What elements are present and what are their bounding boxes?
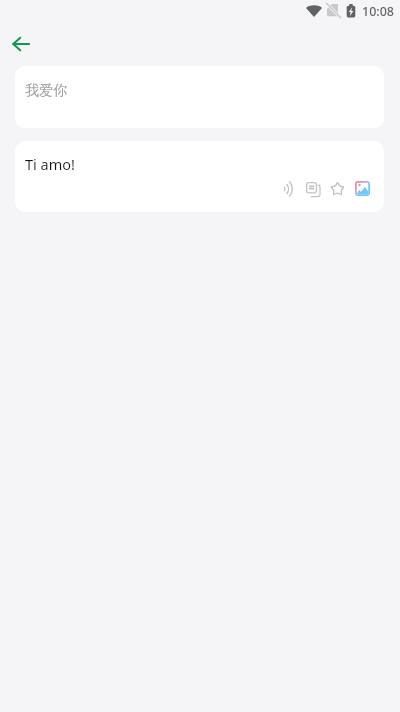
button[interactable]: 我爱你 — [15, 66, 384, 128]
staticText: Ti amo! — [25, 154, 75, 174]
staticText: 10:08 — [362, 3, 395, 20]
button[interactable]: Listen — [275, 176, 300, 201]
staticText: 我爱你 — [25, 82, 67, 100]
button[interactable]: Open image — [350, 176, 375, 201]
button[interactable]: Favorite — [325, 176, 350, 201]
button[interactable]: Copy — [300, 176, 325, 201]
button[interactable]: Back — [1, 24, 41, 64]
